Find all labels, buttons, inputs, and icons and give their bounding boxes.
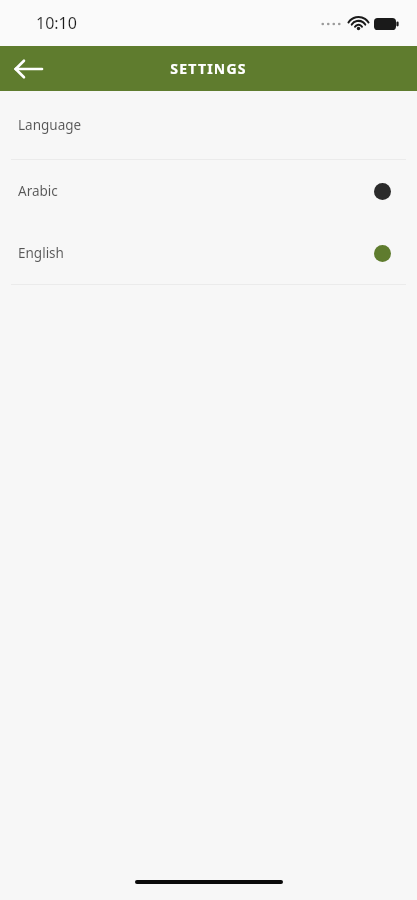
staticText: 10:10 [36, 12, 77, 34]
staticText: Language [18, 116, 82, 134]
staticText: SETTINGS [170, 59, 247, 78]
button[interactable]: English [0, 222, 417, 284]
button[interactable]: Arabic [0, 160, 417, 222]
staticText: English [18, 244, 64, 262]
button[interactable]: Language [0, 91, 417, 159]
staticText: Arabic [18, 182, 58, 200]
button[interactable]: Back [8, 49, 48, 89]
